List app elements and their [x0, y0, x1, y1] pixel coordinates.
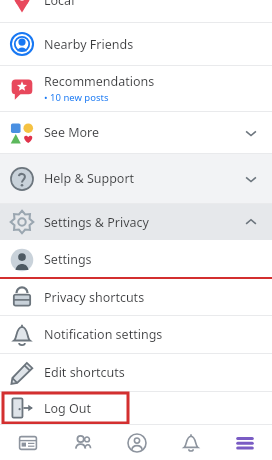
button[interactable]: Friends — [55, 425, 110, 460]
button[interactable]: Help & Support — [0, 154, 272, 203]
button[interactable]: News Feed — [0, 425, 55, 460]
staticText: See More — [44, 124, 100, 141]
button[interactable]: Recommendations — [0, 66, 272, 111]
staticText: Nearby Friends — [44, 36, 134, 53]
button[interactable]: Log Out — [0, 392, 272, 424]
button[interactable]: Menu — [218, 425, 272, 460]
staticText: Settings — [44, 251, 92, 268]
other: Expand — [230, 154, 272, 203]
other: Collapse — [230, 204, 272, 240]
staticText: Edit shortcuts — [44, 364, 125, 381]
staticText: • 10 new posts — [44, 91, 109, 104]
other: Expand — [230, 112, 272, 153]
staticText: Local — [44, 0, 75, 9]
button[interactable]: Profile — [110, 425, 164, 460]
button[interactable]: Settings & Privacy — [0, 204, 272, 240]
button[interactable]: See More — [0, 112, 272, 153]
staticText: Help & Support — [44, 170, 135, 187]
staticText: Recommendations — [44, 73, 155, 90]
button[interactable]: Nearby Friends — [0, 23, 272, 65]
staticText: Settings & Privacy — [44, 214, 149, 231]
staticText: Notification settings — [44, 326, 163, 343]
button[interactable]: Local — [0, 0, 272, 22]
button[interactable]: Notifications — [164, 425, 218, 460]
button[interactable]: Settings — [0, 240, 272, 279]
staticText: Log Out — [44, 400, 92, 417]
button[interactable]: Privacy shortcuts — [0, 279, 272, 315]
button[interactable]: Edit shortcuts — [0, 354, 272, 391]
button[interactable]: Notification settings — [0, 316, 272, 353]
staticText: Privacy shortcuts — [44, 289, 145, 306]
